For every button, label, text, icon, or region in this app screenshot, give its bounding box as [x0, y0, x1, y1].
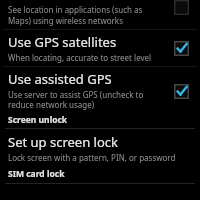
- staticText: Use assisted GPS: [8, 70, 112, 88]
- staticText: Set up screen lock: [8, 133, 119, 151]
- staticText: Use server to assist GPS (uncheck to red…: [8, 89, 144, 111]
- staticText: See location in applications (such as Ma…: [8, 4, 143, 26]
- staticText: Use GPS satellites: [8, 33, 117, 51]
- button[interactable]: Use assisted GPS: [0, 67, 200, 113]
- staticText: Lock screen with a pattern, PIN, or pass…: [8, 152, 176, 163]
- button[interactable]: Use GPS satellites: [0, 30, 200, 66]
- button[interactable]: Use GPS satellites: [169, 36, 193, 60]
- button[interactable]: Set up screen lock: [0, 129, 200, 166]
- button[interactable]: Use wireless networks: [169, 0, 193, 20]
- button[interactable]: Use assisted GPS: [169, 79, 193, 103]
- staticText: SIM card lock: [8, 168, 65, 180]
- staticText: When locating, accurate to street level: [8, 52, 152, 63]
- button[interactable]: See location in applications (such as Ma…: [0, 0, 200, 26]
- staticText: Screen unlock: [8, 114, 68, 126]
